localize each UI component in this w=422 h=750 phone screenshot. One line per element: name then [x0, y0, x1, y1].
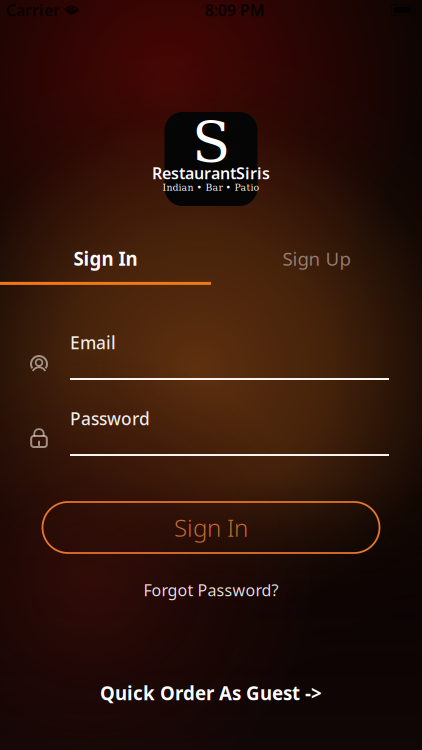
button[interactable]: Sign In: [42, 502, 379, 553]
button[interactable]: Forgot Password?: [111, 580, 311, 600]
staticText: RestaurantSiris: [152, 162, 270, 184]
staticText: Sign In: [73, 246, 137, 271]
staticText: Quick Order As Guest ->: [100, 681, 322, 705]
button[interactable]: Sign In: [0, 242, 211, 281]
staticText: Forgot Password?: [143, 579, 278, 601]
button[interactable]: Quick Order As Guest ->: [0, 676, 422, 710]
staticText: Carrier: [6, 0, 60, 21]
staticText: Indian • Bar • Patio: [162, 182, 259, 193]
staticText: Email: [70, 331, 116, 354]
button[interactable]: Sign Up: [211, 242, 422, 281]
staticText: Password: [70, 407, 150, 430]
staticText: S: [192, 109, 230, 175]
staticText: Sign Up: [282, 246, 350, 271]
staticText: Sign In: [174, 512, 248, 543]
staticText: 8:09 PM: [205, 0, 265, 21]
